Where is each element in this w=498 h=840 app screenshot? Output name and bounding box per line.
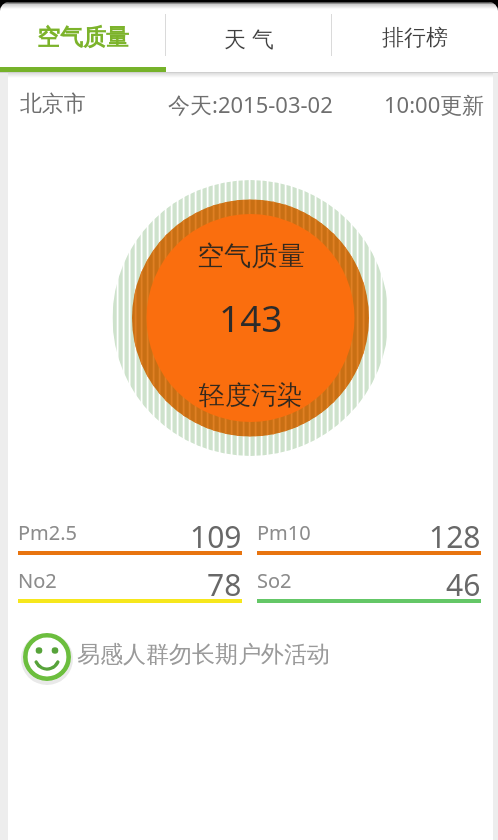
staticText: So2 <box>257 567 292 594</box>
staticText: 109 <box>190 516 242 556</box>
staticText: 78 <box>207 564 242 604</box>
staticText: 空气质量 <box>37 23 129 52</box>
staticText: 易感人群勿长期户外活动 <box>77 640 330 669</box>
staticText: 143 <box>219 292 283 342</box>
button[interactable]: 排行榜 <box>332 2 498 67</box>
staticText: 排行榜 <box>382 24 448 52</box>
staticText: 轻度污染 <box>199 379 303 412</box>
staticText: 空气质量 <box>197 239 305 273</box>
staticText: No2 <box>18 567 57 594</box>
button[interactable]: 天 气 <box>166 2 332 67</box>
button[interactable]: 空气质量 <box>0 2 166 67</box>
button[interactable]: 易感人群勿长期户外活动 <box>19 629 493 685</box>
staticText: 北京市 <box>20 90 86 118</box>
staticText: 128 <box>429 516 481 556</box>
staticText: Pm2.5 <box>18 519 78 546</box>
staticText: 10:00更新 <box>384 89 485 119</box>
staticText: 今天:2015-03-02 <box>168 89 333 119</box>
staticText: 天 气 <box>224 23 274 53</box>
staticText: Pm10 <box>257 519 311 546</box>
staticText: 46 <box>446 564 481 604</box>
